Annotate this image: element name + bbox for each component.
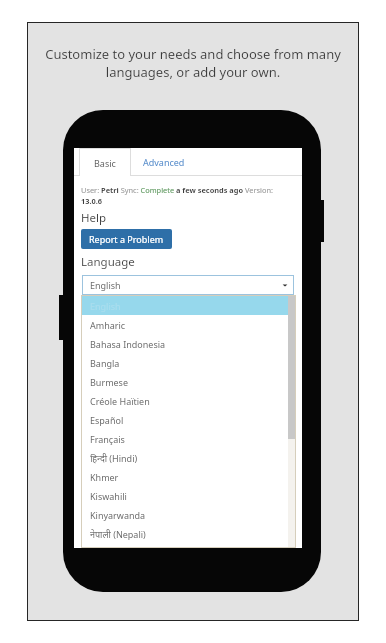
staticText: English: [90, 300, 121, 312]
staticText: Help: [81, 210, 107, 226]
staticText: हिन्दी (Hindi): [90, 452, 138, 464]
staticText: Amharic: [90, 319, 126, 331]
button[interactable]: Français: [82, 429, 295, 448]
button[interactable]: Burmese: [82, 372, 295, 391]
staticText: Kiswahili: [90, 490, 127, 502]
staticText: Burmese: [90, 376, 129, 388]
button[interactable]: Basic: [79, 148, 131, 176]
staticText: English: [90, 279, 121, 291]
staticText: Français: [90, 433, 125, 445]
button[interactable]: नेपाली (Nepali): [82, 524, 295, 543]
staticText: Language: [81, 254, 135, 270]
button[interactable]: Report a Problem: [81, 229, 172, 249]
button[interactable]: Bangla: [82, 353, 295, 372]
button[interactable]: हिन्दी (Hindi): [82, 448, 295, 467]
button[interactable]: Kinyarwanda: [82, 505, 295, 524]
button[interactable]: Bahasa Indonesia: [82, 334, 295, 353]
staticText: Customize to your needs and choose from …: [36, 45, 350, 81]
button[interactable]: Khmer: [82, 467, 295, 486]
button[interactable]: English: [82, 296, 295, 315]
staticText: Bangla: [90, 357, 120, 369]
staticText: Khmer: [90, 471, 119, 483]
staticText: Report a Problem: [89, 233, 164, 245]
staticText: Advanced: [143, 156, 185, 168]
staticText: User: Petri Sync: Complete a few seconds…: [81, 185, 286, 206]
button[interactable]: Select language: [82, 275, 294, 295]
staticText: Kinyarwanda: [90, 509, 146, 521]
button[interactable]: Amharic: [82, 315, 295, 334]
button[interactable]: Kiswahili: [82, 486, 295, 505]
staticText: Español: [90, 414, 124, 426]
button[interactable]: Créole Haïtien: [82, 391, 295, 410]
button[interactable]: Advanced: [131, 148, 197, 176]
staticText: Créole Haïtien: [90, 395, 150, 407]
staticText: Bahasa Indonesia: [90, 338, 166, 350]
button[interactable]: Español: [82, 410, 295, 429]
staticText: Basic: [94, 157, 116, 169]
staticText: नेपाली (Nepali): [90, 528, 146, 540]
